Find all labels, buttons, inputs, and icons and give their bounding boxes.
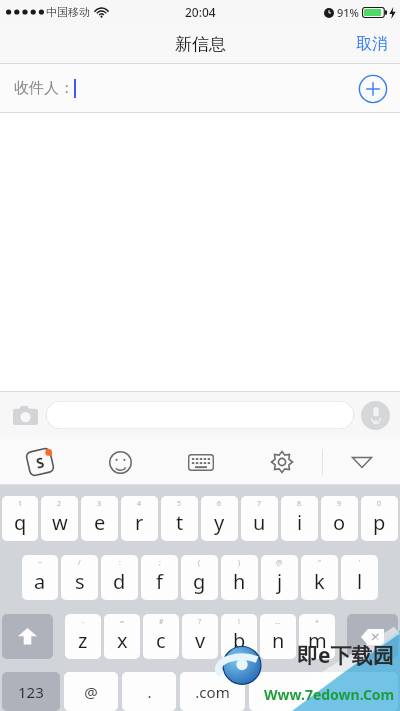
staticText: 8 bbox=[297, 499, 302, 509]
staticText: ; bbox=[159, 558, 161, 568]
staticText: : bbox=[119, 558, 121, 568]
staticText: " bbox=[318, 558, 321, 568]
button[interactable]: Space and return bbox=[249, 672, 398, 711]
button[interactable]: ~ bbox=[22, 555, 58, 600]
staticText: ! bbox=[238, 617, 240, 627]
button[interactable]: Voice input bbox=[361, 401, 390, 430]
staticText: - bbox=[82, 617, 85, 627]
staticText: g bbox=[193, 568, 206, 595]
button[interactable]: 7 bbox=[241, 496, 278, 541]
button[interactable]: Camera bbox=[10, 400, 40, 430]
staticText: ' bbox=[359, 558, 361, 568]
staticText: 5 bbox=[177, 499, 182, 509]
button[interactable]: Keyboard layout bbox=[160, 439, 241, 485]
staticText: + bbox=[315, 617, 320, 627]
button[interactable]: 6 bbox=[201, 496, 238, 541]
button[interactable]: / bbox=[61, 555, 98, 600]
button[interactable]: 1 bbox=[2, 496, 38, 541]
staticText: z bbox=[78, 627, 88, 654]
button[interactable]: # bbox=[143, 614, 179, 659]
staticText: 1 bbox=[18, 499, 23, 509]
button[interactable]: ' bbox=[341, 555, 378, 600]
button[interactable]: 5 bbox=[161, 496, 198, 541]
staticText: ~ bbox=[38, 558, 43, 568]
staticText: … bbox=[275, 617, 281, 627]
button[interactable]: .com bbox=[180, 672, 245, 711]
staticText: 9 bbox=[337, 499, 342, 509]
staticText: e bbox=[94, 509, 106, 536]
staticText: 即e下载园 bbox=[297, 641, 394, 670]
button[interactable]: Settings bbox=[241, 439, 322, 485]
staticText: S bbox=[34, 452, 46, 473]
staticText: t bbox=[176, 509, 184, 536]
button[interactable]: 3 bbox=[81, 496, 118, 541]
button[interactable]: Hide keyboard bbox=[323, 439, 400, 485]
button[interactable]: " bbox=[301, 555, 338, 600]
staticText: 0 bbox=[377, 499, 382, 509]
button[interactable]: 4 bbox=[121, 496, 158, 541]
staticText: l bbox=[357, 568, 363, 595]
staticText: j bbox=[277, 568, 283, 595]
button[interactable]: 9 bbox=[321, 496, 358, 541]
button[interactable]: + bbox=[299, 614, 335, 659]
button[interactable]: = bbox=[104, 614, 140, 659]
button[interactable]: 取消 bbox=[344, 26, 400, 62]
button[interactable]: Add recipient bbox=[358, 74, 388, 104]
staticText: c bbox=[156, 627, 166, 654]
staticText: d bbox=[113, 568, 126, 595]
staticText: @ bbox=[84, 682, 98, 702]
staticText: / bbox=[78, 558, 81, 568]
staticText: # bbox=[159, 617, 164, 627]
staticText: m bbox=[308, 627, 327, 654]
staticText: @ bbox=[276, 558, 283, 568]
button[interactable]: @ bbox=[261, 555, 298, 600]
staticText: 20:04 bbox=[185, 4, 216, 20]
button[interactable]: ( bbox=[181, 555, 218, 600]
staticText: Www.7edown.Com bbox=[264, 685, 395, 704]
staticText: ) bbox=[238, 558, 241, 568]
staticText: 新信息 bbox=[175, 34, 226, 55]
staticText: ( bbox=[198, 558, 201, 568]
staticText: f bbox=[156, 568, 163, 595]
button[interactable]: 8 bbox=[281, 496, 318, 541]
staticText: = bbox=[120, 617, 125, 627]
staticText: 取消 bbox=[356, 34, 388, 54]
staticText: 91% bbox=[337, 5, 359, 20]
staticText: 7 bbox=[257, 499, 262, 509]
staticText: i bbox=[297, 509, 303, 536]
staticText: u bbox=[253, 509, 266, 536]
staticText: ? bbox=[198, 617, 202, 627]
button[interactable]: : bbox=[101, 555, 138, 600]
button[interactable]: ) bbox=[221, 555, 258, 600]
staticText: 2 bbox=[57, 499, 62, 509]
staticText: . bbox=[147, 682, 152, 702]
staticText: 3 bbox=[97, 499, 102, 509]
staticText: 6 bbox=[217, 499, 222, 509]
staticText: p bbox=[373, 509, 386, 536]
button[interactable]: 0 bbox=[361, 496, 398, 541]
button[interactable] bbox=[46, 401, 354, 429]
button[interactable]: 123 bbox=[2, 672, 60, 711]
button[interactable]: Sogou input method bbox=[0, 439, 80, 485]
button[interactable]: ! bbox=[221, 614, 257, 659]
button[interactable]: 2 bbox=[41, 496, 78, 541]
staticText: w bbox=[52, 509, 68, 536]
staticText: 中国移动 bbox=[46, 5, 90, 19]
staticText: y bbox=[214, 509, 225, 536]
button[interactable]: Emoji bbox=[80, 439, 160, 485]
staticText: n bbox=[272, 627, 285, 654]
staticText: a bbox=[34, 568, 46, 595]
button[interactable]: @ bbox=[64, 672, 118, 711]
button[interactable]: - bbox=[65, 614, 101, 659]
button[interactable]: Shift bbox=[2, 614, 53, 659]
staticText: 4 bbox=[137, 499, 142, 509]
button[interactable]: . bbox=[122, 672, 176, 711]
staticText: x bbox=[117, 627, 128, 654]
button[interactable]: … bbox=[260, 614, 296, 659]
button[interactable]: ? bbox=[182, 614, 218, 659]
staticText: 123 bbox=[18, 682, 44, 702]
button[interactable]: ; bbox=[141, 555, 178, 600]
button[interactable]: Backspace bbox=[347, 614, 398, 659]
staticText: q bbox=[14, 509, 27, 536]
staticText: h bbox=[233, 568, 246, 595]
